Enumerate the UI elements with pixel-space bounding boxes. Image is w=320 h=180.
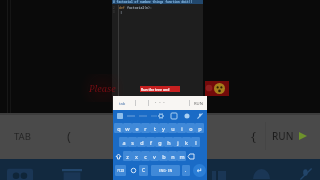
button[interactable]: TAB [4,113,41,159]
staticText: 3 [113,10,115,14]
button[interactable]: Settings [158,113,164,119]
button[interactable]: Emoji [129,165,137,176]
button[interactable]: C [139,165,148,176]
button[interactable]: { [237,113,269,159]
staticText: Run the tree and submit [141,87,179,92]
staticText: e [135,125,139,132]
button[interactable]: r [141,123,150,133]
staticText: g [158,139,162,146]
button[interactable]: Mute [298,159,320,180]
staticText: j [177,139,179,146]
button[interactable]: . [182,165,190,176]
button[interactable]: w [123,123,132,133]
staticText: l [195,139,197,146]
button[interactable]: u [168,123,177,133]
staticText: z [126,153,129,160]
button[interactable]: z [123,151,132,161]
button[interactable]: m [177,151,186,161]
button[interactable]: ?123 [115,165,126,176]
button[interactable]: Backspace [186,150,195,162]
button[interactable]: b [159,151,168,161]
staticText: h [167,139,171,146]
button[interactable]: Clipboard [58,159,88,180]
staticText: v [153,153,156,160]
staticText: # factorial of number things function do… [113,0,193,4]
staticText: RUN [194,101,203,107]
button[interactable]: i [177,123,186,133]
staticText: u [171,125,175,132]
button[interactable]: o [186,123,195,133]
staticText: ENG · EN [159,169,173,173]
button[interactable]: k [182,137,191,147]
staticText: 2 [113,6,115,10]
button[interactable]: n [168,151,177,161]
staticText: C [142,167,146,174]
button[interactable]: v [150,151,159,161]
button[interactable]: p [195,123,204,133]
button[interactable]: c [141,151,150,161]
button[interactable]: Stickers [171,113,177,119]
staticText: Please [89,82,116,94]
button[interactable]: Run the tree and submit [141,86,179,92]
staticText: ( [67,127,71,145]
button[interactable]: Games [252,159,276,180]
button[interactable]: g [155,137,164,147]
staticText: t [154,125,156,132]
staticText: def [119,6,127,10]
staticText: s [131,139,134,146]
button[interactable]: Library [210,159,234,180]
staticText: . [185,167,187,174]
staticText: ?123 [117,168,125,173]
button[interactable]: s [128,137,137,147]
staticText: f [150,139,152,146]
staticText: c [144,153,147,160]
button[interactable]: j [173,137,182,147]
button[interactable]: Theme [184,113,190,119]
button[interactable]: y [159,123,168,133]
button[interactable]: Gallery [3,159,37,180]
staticText: n [171,153,175,160]
button[interactable]: Reaction [205,81,229,96]
staticText: | [120,10,123,14]
staticText: tab [119,101,126,107]
button[interactable]: q [114,123,123,133]
staticText: q [117,125,121,132]
button[interactable]: a [119,137,128,147]
button[interactable]: d [137,137,146,147]
staticText: p [198,125,202,132]
button[interactable]: f [146,137,155,147]
staticText: TAB [14,130,31,143]
staticText: y [162,125,165,132]
button[interactable]: l [191,137,200,147]
staticText: o [189,125,193,132]
button[interactable]: Microphone off [197,113,203,119]
staticText: • • • [155,100,165,105]
button[interactable]: t [150,123,159,133]
staticText: b [162,153,166,160]
button[interactable]: ( [52,113,86,159]
staticText: ↵ [197,167,203,175]
button[interactable]: Enter [193,164,206,177]
staticText: w [125,125,130,132]
button[interactable]: h [164,137,173,147]
button[interactable]: e [132,123,141,133]
staticText: a [122,139,126,146]
staticText: m [179,153,185,160]
button[interactable]: RUN [272,113,320,159]
staticText: i [181,125,183,132]
button[interactable]: x [132,151,141,161]
staticText: factorial(n): [127,6,152,10]
staticText: RUN [272,129,294,143]
staticText: k [185,139,188,146]
button[interactable]: Shift [114,150,123,162]
staticText: x [135,153,138,160]
staticText: r [144,125,147,132]
staticText: { [251,127,256,145]
button[interactable]: Menu [117,113,123,119]
staticText: d [140,139,144,146]
button[interactable]: Space [151,165,180,176]
